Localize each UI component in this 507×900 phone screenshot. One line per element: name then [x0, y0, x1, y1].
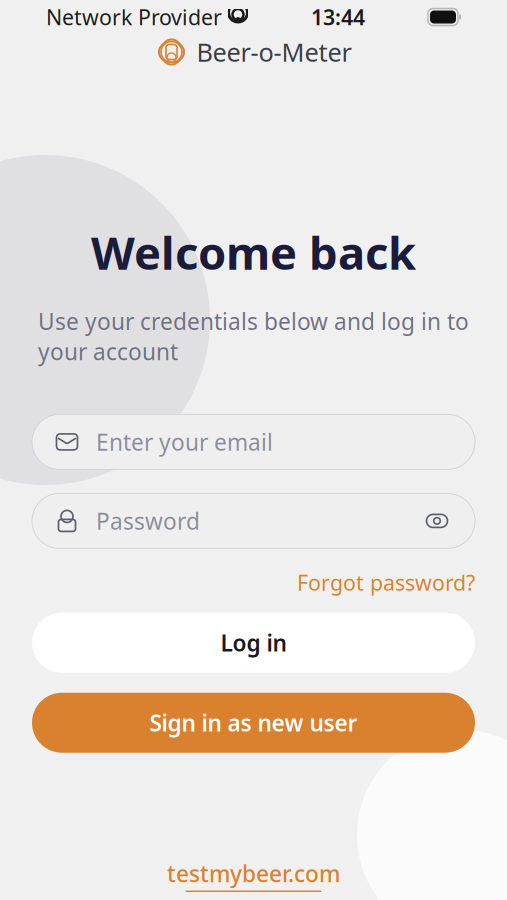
- staticText: 13:44: [311, 3, 365, 31]
- staticText: Beer-o-Meter: [196, 35, 351, 69]
- button[interactable]: Enter your email: [32, 414, 475, 469]
- button[interactable]: Log in: [32, 613, 475, 673]
- button[interactable]: testmybeer.com: [167, 858, 340, 892]
- staticText: Enter your email: [96, 427, 273, 457]
- button[interactable]: Password: [32, 493, 475, 548]
- staticText: Log in: [220, 628, 286, 658]
- button[interactable]: Sign in as new user: [32, 693, 475, 753]
- button[interactable]: Forgot password?: [297, 564, 475, 601]
- button[interactable]: Show password: [421, 507, 453, 535]
- staticText: Welcome back: [91, 222, 416, 282]
- staticText: Sign in as new user: [149, 708, 357, 738]
- staticText: Use your credentials below and log in to…: [38, 306, 469, 366]
- staticText: Network Provider: [46, 3, 222, 31]
- staticText: Password: [96, 506, 200, 536]
- staticText: Forgot password?: [297, 568, 475, 597]
- staticText: testmybeer.com: [167, 858, 340, 888]
